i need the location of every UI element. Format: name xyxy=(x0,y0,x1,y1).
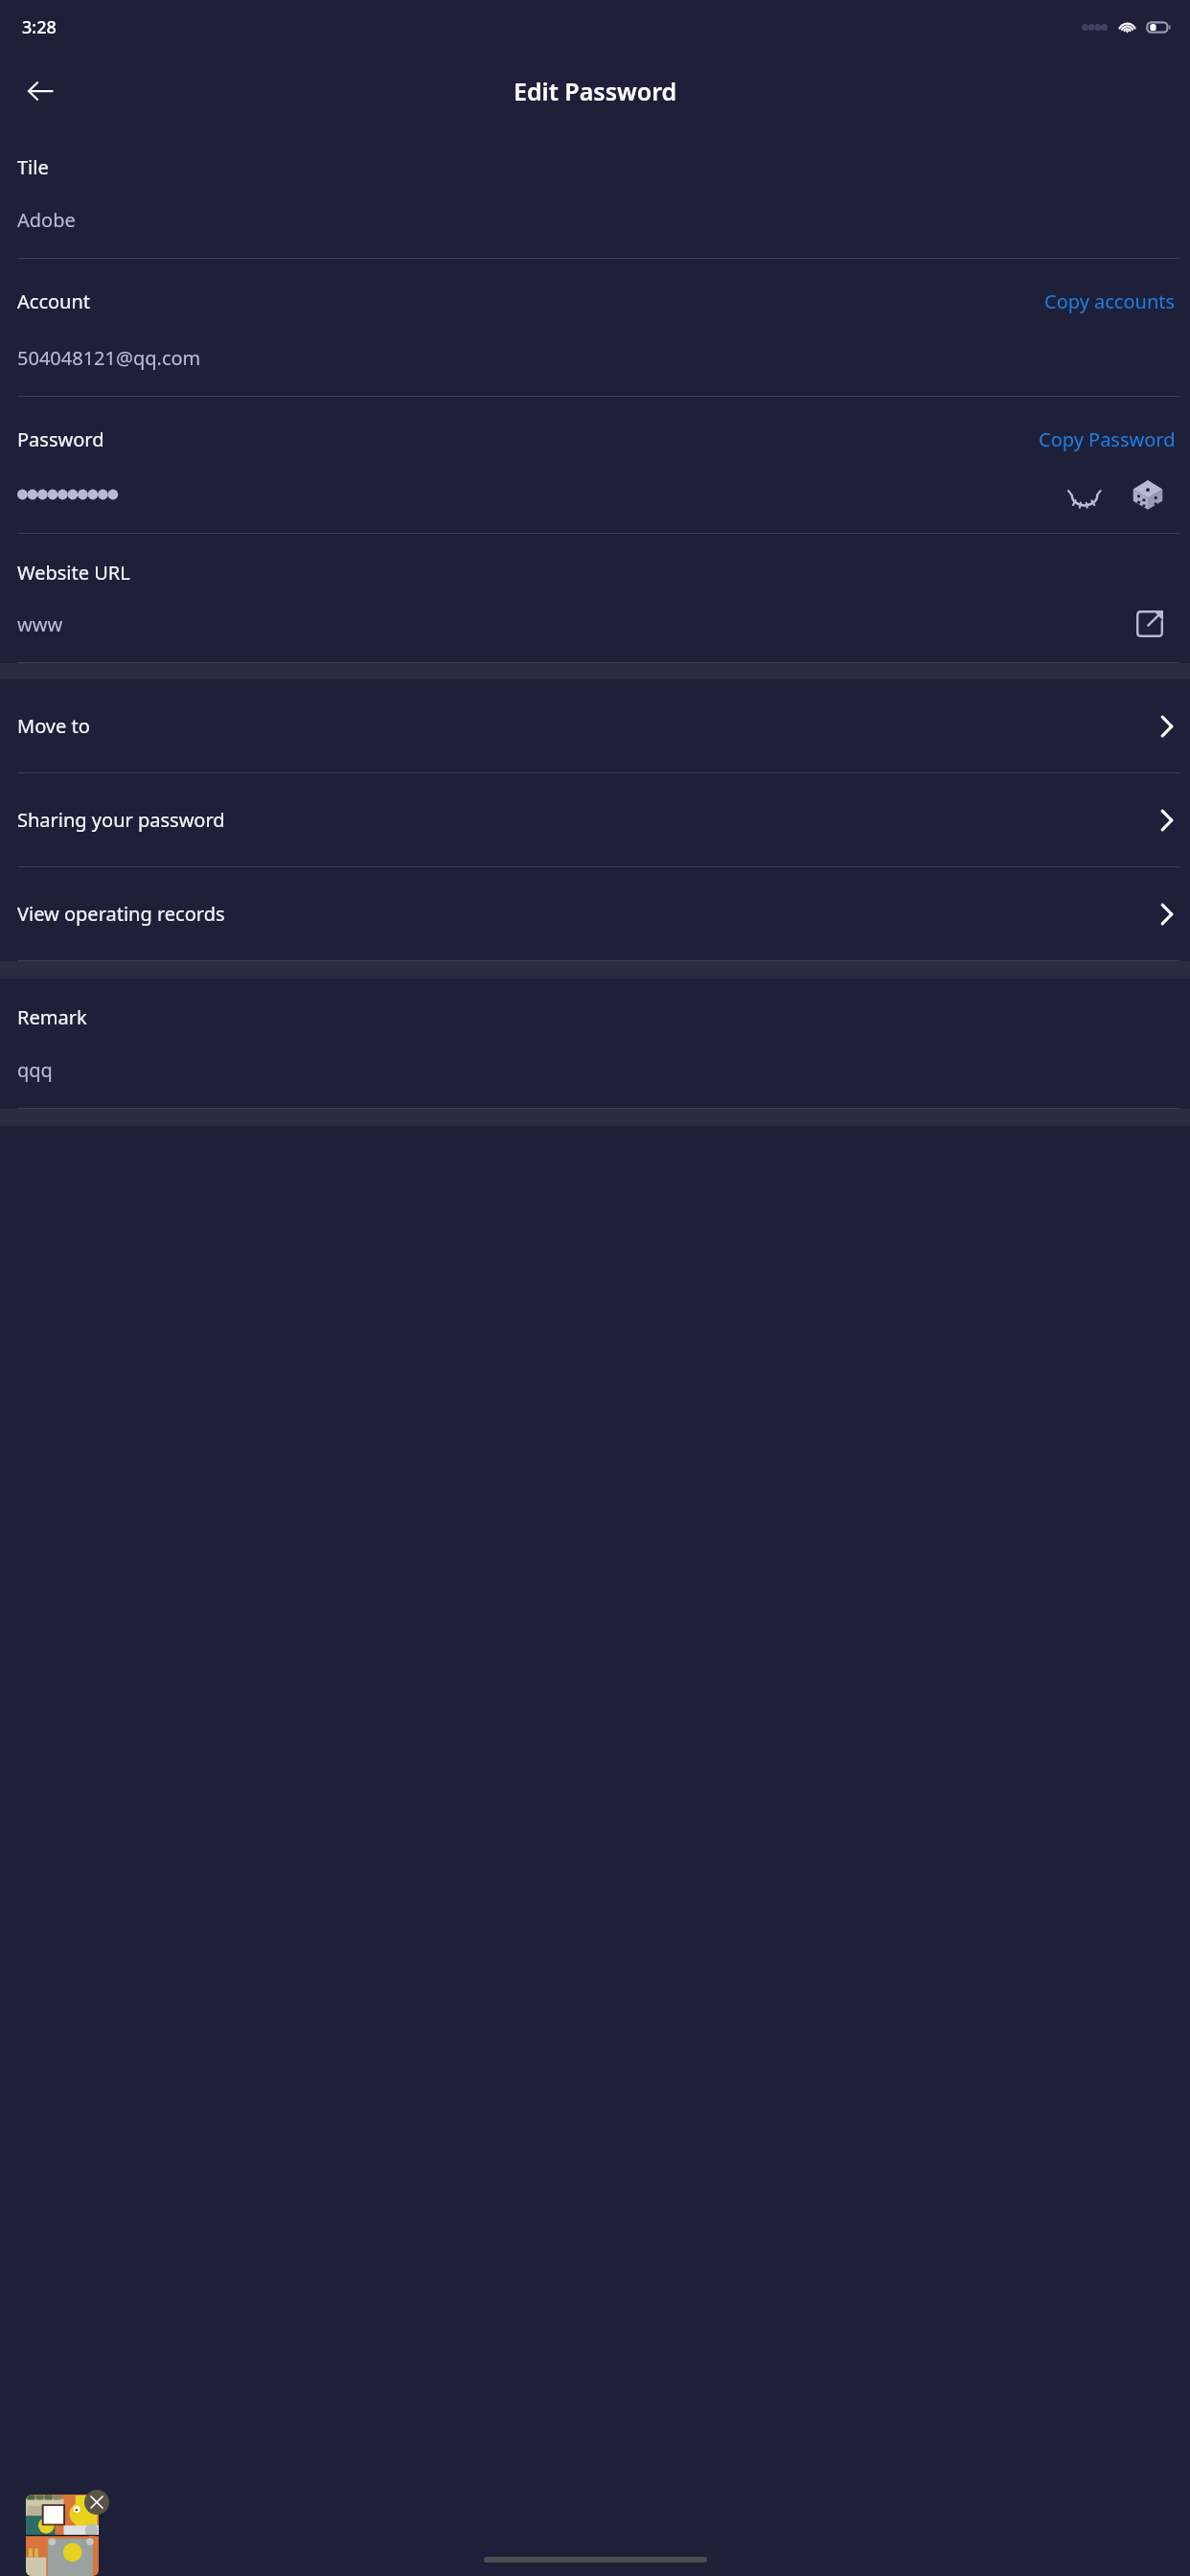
staticText: Password xyxy=(17,426,104,452)
staticText: Remark xyxy=(17,1004,87,1030)
button[interactable]: Sharing your password xyxy=(0,773,1190,867)
button[interactable]: Show password xyxy=(1058,477,1111,512)
button[interactable]: Move to xyxy=(0,679,1190,773)
staticText: Sharing your password xyxy=(17,807,225,833)
staticText: Adobe xyxy=(17,207,76,233)
button[interactable]: Copy Password xyxy=(1035,423,1179,456)
staticText: 504048121@qq.com xyxy=(17,345,201,371)
button[interactable]: Close xyxy=(84,2490,109,2515)
staticText: qqq xyxy=(17,1057,53,1083)
button[interactable]: View operating records xyxy=(0,867,1190,961)
staticText: Edit Password xyxy=(514,75,677,107)
staticText: Copy Password xyxy=(1039,426,1176,452)
staticText: www xyxy=(17,611,63,637)
button[interactable]: Account xyxy=(0,259,1190,397)
button[interactable]: Video thumbnail xyxy=(26,2495,99,2576)
button[interactable]: Tile xyxy=(0,128,1190,259)
button[interactable]: Generate password xyxy=(1121,477,1175,512)
staticText: Tile xyxy=(17,154,49,180)
button[interactable]: Back xyxy=(15,66,65,116)
staticText: Website URL xyxy=(17,560,130,586)
staticText: Account xyxy=(17,288,91,314)
button[interactable]: Remark xyxy=(0,978,1190,1109)
staticText: View operating records xyxy=(17,901,225,927)
button[interactable]: Open website xyxy=(1125,607,1175,641)
staticText: 3:28 xyxy=(22,15,57,39)
button[interactable]: Copy accounts xyxy=(1041,285,1179,318)
staticText: Move to xyxy=(17,713,90,739)
staticText: Copy accounts xyxy=(1044,288,1176,314)
